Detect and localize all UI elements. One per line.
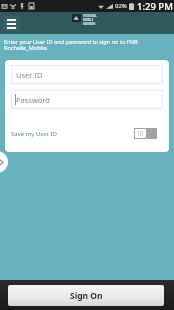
staticText: Save my User ID xyxy=(11,130,57,138)
staticText: User ID xyxy=(16,70,43,80)
staticText: 92% xyxy=(115,2,127,10)
button[interactable]: Expand xyxy=(0,151,8,173)
button[interactable]: User ID xyxy=(11,65,163,84)
staticText: Sign On xyxy=(70,290,103,302)
button[interactable]: Save my User ID xyxy=(134,128,157,139)
staticText: MOBILE xyxy=(83,18,94,22)
staticText: Password xyxy=(16,95,50,105)
staticText: PERSONAL xyxy=(83,14,97,18)
button[interactable]: Sign On xyxy=(8,285,164,306)
staticText: BANKING xyxy=(83,22,96,26)
staticText: Enter your User ID and password to sign … xyxy=(4,38,138,52)
button[interactable]: Menu xyxy=(3,16,20,31)
button[interactable]: Password xyxy=(11,90,163,109)
staticText: 1:29 PM xyxy=(137,0,173,12)
